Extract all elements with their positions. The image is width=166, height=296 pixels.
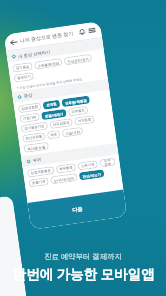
- staticText: 다음: [71, 205, 83, 214]
- button[interactable]: 감염성질환: [18, 102, 42, 113]
- button[interactable]: Notifications: [76, 26, 88, 37]
- button[interactable]: 피부질환: [99, 157, 116, 167]
- staticText: 부위: [32, 157, 42, 163]
- button[interactable]: 알레르기: [13, 72, 34, 83]
- staticText: 고열/오한: [65, 129, 80, 136]
- button[interactable]: 어지럼증: [74, 115, 95, 126]
- button[interactable]: 다음: [27, 190, 127, 230]
- staticText: 건강검진/검사: [67, 56, 89, 64]
- staticText: 감기몸살: [15, 64, 30, 70]
- staticText: 소화불량/장염: [37, 60, 60, 68]
- button[interactable]: 고열/오한: [61, 127, 83, 137]
- button[interactable]: 체온: [47, 130, 61, 140]
- button[interactable]: 코막힘: [42, 100, 60, 110]
- staticText: 어지럼증: [77, 117, 92, 123]
- staticText: 소화기관: [80, 162, 95, 168]
- button[interactable]: 호흡기관: [28, 177, 49, 188]
- staticText: 콧물/재채기: [44, 111, 64, 119]
- button[interactable]: 감기몸살기운: [20, 121, 48, 133]
- button[interactable]: 전신/비뇨기: [79, 169, 105, 180]
- button[interactable]: 복부통증: [55, 163, 76, 174]
- button[interactable]: 목아픔/눈물: [23, 142, 49, 153]
- button[interactable]: 전신근육통: [22, 132, 46, 143]
- staticText: 인후통/목통증: [65, 98, 87, 106]
- staticText: 피로감증상: [52, 120, 70, 127]
- staticText: 코막힘: [46, 102, 57, 107]
- staticText: 눈/귀/코/입안: [53, 175, 75, 183]
- staticText: 감염성질환: [21, 105, 38, 111]
- staticText: 전신근육통: [25, 134, 43, 141]
- button[interactable]: 소화기관: [77, 160, 98, 171]
- button[interactable]: 감기몸살: [12, 62, 33, 73]
- button[interactable]: 기침가래: [19, 113, 40, 123]
- button[interactable]: 건강검진/검사: [63, 54, 92, 65]
- staticText: 전신/비뇨기: [82, 171, 101, 179]
- button[interactable]: 콧물/재채기: [41, 109, 67, 120]
- button[interactable]: 피부발진: [68, 106, 89, 116]
- button[interactable]: 심장계통통증: [27, 166, 55, 178]
- staticText: 감기몸살기운: [24, 124, 45, 131]
- button[interactable]: 소화불량/장염: [34, 58, 63, 70]
- button[interactable]: Menu: [86, 25, 98, 36]
- staticText: 호흡기관: [31, 179, 46, 185]
- staticText: 나의 증상으로 병원 찾기: [19, 30, 74, 44]
- staticText: 증상: [23, 92, 33, 98]
- staticText: 목아픔/눈물: [27, 144, 46, 152]
- staticText: 기침가래: [22, 115, 37, 121]
- staticText: 심장계통통증: [30, 168, 51, 175]
- staticText: 내 증상 선택하기: [17, 48, 51, 59]
- button[interactable]: 피로감증상: [49, 118, 73, 129]
- staticText: 진료 예약부터 결제까지: [44, 251, 122, 261]
- staticText: 체온: [50, 132, 57, 137]
- staticText: 복부통증: [59, 165, 73, 171]
- staticText: 피부질환: [102, 158, 113, 167]
- button[interactable]: 인후통/목통증: [61, 95, 90, 107]
- button[interactable]: Back: [8, 37, 18, 47]
- button[interactable]: 눈/귀/코/입안: [50, 173, 78, 185]
- staticText: 한번에 가능한 모바일앱: [12, 265, 155, 283]
- staticText: * 가장 신경이 쓰이는 증상을 먼저 선택해 주세요: [16, 77, 83, 90]
- staticText: 피부발진: [71, 108, 85, 114]
- staticText: 알레르기: [17, 74, 31, 80]
